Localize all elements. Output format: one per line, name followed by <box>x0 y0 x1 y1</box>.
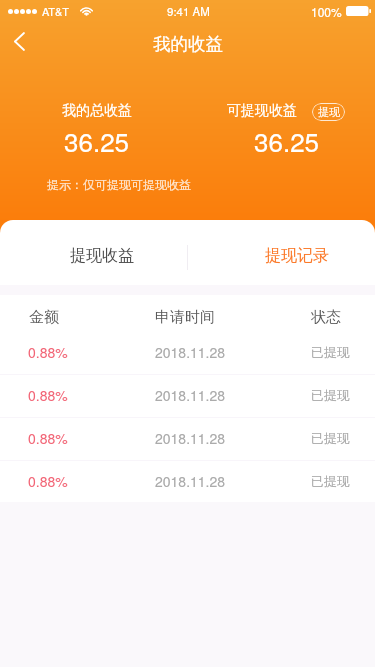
staticText: 提示：仅可提现可提现收益 <box>47 177 191 192</box>
staticText: 2018.11.28 <box>155 428 226 448</box>
staticText: 我的收益 <box>153 33 223 55</box>
button[interactable]: 提现 <box>312 103 345 121</box>
staticText: 已提现 <box>311 473 350 489</box>
staticText: 0.88% <box>28 385 68 405</box>
staticText: 100% <box>311 3 342 20</box>
staticText: 我的总收益 <box>62 102 132 120</box>
staticText: 2018.11.28 <box>155 471 226 491</box>
staticText: 状态 <box>311 308 341 327</box>
staticText: 2018.11.28 <box>155 385 226 405</box>
staticText: 金额 <box>29 308 59 327</box>
button[interactable]: 提现记录 <box>187 220 375 285</box>
button[interactable]: 0.88% <box>0 461 375 502</box>
staticText: 0.88% <box>28 471 68 491</box>
staticText: 提现记录 <box>265 246 329 266</box>
button[interactable]: Back <box>0 22 40 62</box>
button[interactable]: 0.88% <box>0 418 375 460</box>
staticText: 已提现 <box>311 430 350 446</box>
staticText: 提现收益 <box>70 246 134 266</box>
staticText: 0.88% <box>28 342 68 362</box>
button[interactable]: 0.88% <box>0 375 375 417</box>
staticText: 申请时间 <box>155 308 215 327</box>
staticText: 提现 <box>318 105 340 119</box>
staticText: 36.25 <box>64 122 130 159</box>
staticText: AT&T <box>42 3 70 19</box>
staticText: 2018.11.28 <box>155 342 226 362</box>
staticText: 36.25 <box>254 122 320 159</box>
staticText: 0.88% <box>28 428 68 448</box>
staticText: 已提现 <box>311 344 350 360</box>
staticText: 已提现 <box>311 387 350 403</box>
staticText: 可提现收益 <box>227 102 297 120</box>
button[interactable]: 0.88% <box>0 332 375 374</box>
button[interactable]: 提现收益 <box>0 220 187 285</box>
staticText: 9:41 AM <box>167 3 210 19</box>
